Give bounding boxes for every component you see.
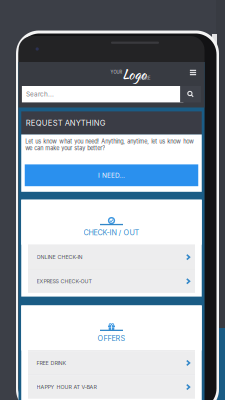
staticText: OFFERS bbox=[97, 334, 125, 343]
button[interactable]: FREE DRINK bbox=[28, 351, 195, 375]
staticText: ONLINE CHECK-IN bbox=[36, 254, 82, 260]
staticText: I NEED... bbox=[98, 171, 125, 179]
button[interactable]: I NEED... bbox=[25, 164, 198, 186]
staticText: HERE bbox=[140, 76, 150, 81]
staticText: HAPPY HOUR AT V-BAR bbox=[36, 384, 96, 390]
button[interactable]: Search... bbox=[22, 86, 183, 102]
staticText: EXPRESS CHECK-OUT bbox=[36, 278, 91, 284]
button[interactable]: ONLINE CHECK-IN bbox=[28, 245, 195, 269]
button[interactable]: Search bbox=[180, 86, 201, 102]
staticText: CHECK-IN / OUT bbox=[83, 228, 139, 237]
staticText: Let us know what you need! Anything, any… bbox=[25, 138, 194, 152]
button[interactable]: HAPPY HOUR AT V-BAR bbox=[28, 375, 195, 399]
button[interactable]: EXPRESS CHECK-OUT bbox=[28, 270, 195, 293]
staticText: REQUEST ANYTHING bbox=[26, 118, 106, 128]
staticText: Search... bbox=[26, 90, 54, 98]
button[interactable]: Menu bbox=[186, 65, 200, 79]
staticText: FREE DRINK bbox=[36, 360, 66, 366]
staticText: Logo bbox=[122, 65, 146, 84]
staticText: YOUR bbox=[110, 70, 122, 75]
